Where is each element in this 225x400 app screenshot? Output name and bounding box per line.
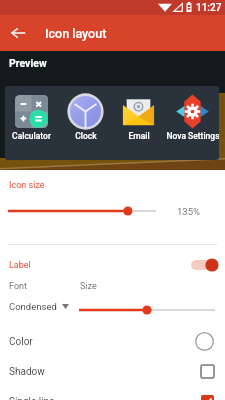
staticText: Icon size [9, 180, 45, 191]
staticText: Email [128, 131, 150, 141]
staticText: Shadow [9, 366, 201, 378]
button[interactable]: Back [6, 21, 30, 45]
staticText: Condensed [9, 301, 57, 312]
staticText: Color [9, 336, 195, 348]
staticText: Clock [75, 131, 97, 141]
button[interactable]: Label [0, 252, 225, 278]
staticText: Nova Settings [166, 131, 219, 141]
button[interactable]: Shadow [0, 357, 225, 386]
staticText: 11:27 [196, 2, 222, 14]
staticText: Single line [9, 396, 201, 400]
staticText: 135% [177, 206, 200, 217]
button[interactable]: 135% [159, 203, 217, 219]
staticText: Font [9, 281, 27, 292]
staticText: Calculator [12, 131, 51, 141]
button[interactable]: Calculator [5, 93, 58, 153]
staticText: Size [80, 281, 97, 292]
button[interactable]: Email [112, 93, 165, 153]
button[interactable]: Condensed [9, 297, 69, 315]
button[interactable]: Single line [0, 387, 225, 400]
button[interactable]: Color [0, 327, 225, 356]
staticText: Label [9, 260, 191, 271]
staticText: Preview [9, 57, 47, 69]
button[interactable]: Clock [59, 93, 112, 153]
staticText: Icon layout [45, 26, 107, 41]
button[interactable]: Nova Settings [166, 93, 219, 153]
